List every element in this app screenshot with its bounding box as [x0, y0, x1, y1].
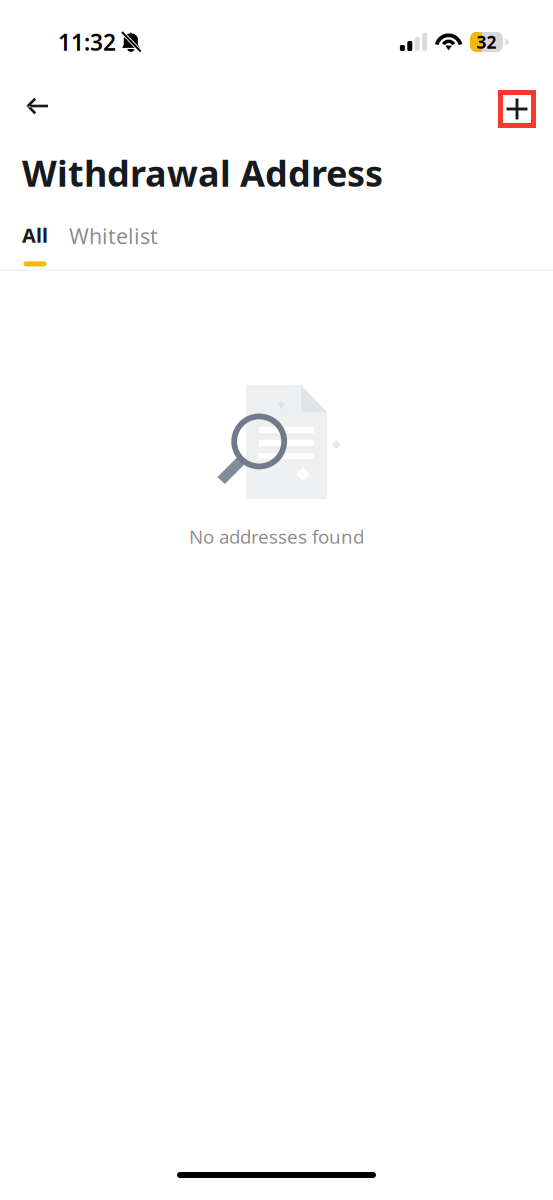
- staticText: No addresses found: [189, 524, 364, 549]
- staticText: All: [22, 222, 48, 248]
- staticText: 11:32: [58, 27, 116, 57]
- staticText: Withdrawal Address: [22, 149, 383, 197]
- button[interactable]: Add address: [497, 89, 537, 129]
- button[interactable]: All: [22, 222, 48, 266]
- button[interactable]: Back: [26, 89, 70, 129]
- button[interactable]: Whitelist: [69, 222, 158, 268]
- staticText: 32: [476, 30, 496, 53]
- staticText: Whitelist: [69, 222, 158, 250]
